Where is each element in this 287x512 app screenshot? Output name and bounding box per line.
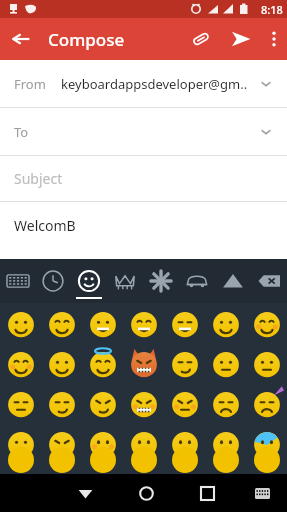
- button[interactable]: Delete: [251, 259, 287, 303]
- button[interactable]: Emoji: [164, 385, 205, 425]
- button[interactable]: From: [0, 60, 287, 107]
- button[interactable]: Send: [221, 19, 261, 59]
- button[interactable]: Back: [55, 474, 116, 512]
- button[interactable]: To: [0, 108, 287, 155]
- button[interactable]: Objects: [107, 259, 143, 303]
- button[interactable]: Emoji: [164, 305, 205, 345]
- button[interactable]: Keyboard: [0, 259, 35, 303]
- button[interactable]: Emoji: [205, 345, 246, 385]
- button[interactable]: Symbols: [143, 259, 179, 303]
- button[interactable]: Emoji: [205, 385, 246, 425]
- staticText: To: [14, 123, 259, 141]
- button[interactable]: Emoji: [205, 305, 246, 345]
- button[interactable]: Emoji: [205, 425, 246, 465]
- button[interactable]: Home: [116, 474, 177, 512]
- button[interactable]: Emoji: [0, 385, 41, 425]
- staticText: keyboardappsdeveloper@gm..: [61, 75, 259, 93]
- button[interactable]: Subject: [0, 156, 287, 201]
- button[interactable]: Nature: [215, 259, 251, 303]
- button[interactable]: Recent: [35, 259, 71, 303]
- button[interactable]: Emoji: [82, 425, 123, 465]
- button[interactable]: Emoji: [246, 425, 287, 465]
- button[interactable]: Emoji: [123, 345, 164, 385]
- button[interactable]: Emoji: [246, 385, 287, 425]
- staticText: 8:18: [261, 2, 283, 17]
- button[interactable]: Emoji: [41, 425, 82, 465]
- button[interactable]: Emoji: [82, 385, 123, 425]
- button[interactable]: Emoji: [41, 345, 82, 385]
- button[interactable]: Emoji: [164, 345, 205, 385]
- button[interactable]: Emoji: [41, 385, 82, 425]
- button[interactable]: Emoji: [0, 305, 41, 345]
- button[interactable]: Emoji: [246, 345, 287, 385]
- button[interactable]: Attach file: [181, 19, 221, 59]
- button[interactable]: Emoji: [0, 345, 41, 385]
- staticText: WelcomB: [14, 216, 76, 235]
- button[interactable]: More options: [261, 18, 287, 60]
- button[interactable]: Emoji: [82, 305, 123, 345]
- staticText: Subject: [14, 169, 63, 188]
- button[interactable]: Emoji: [164, 425, 205, 465]
- staticText: Compose: [48, 28, 125, 51]
- button[interactable]: Switch keyboard: [238, 474, 287, 512]
- button[interactable]: Emoji: [246, 305, 287, 345]
- button[interactable]: Emoji: [0, 425, 41, 465]
- button[interactable]: Emoji: [82, 345, 123, 385]
- button[interactable]: Recent apps: [177, 474, 238, 512]
- button[interactable]: Emoji: [123, 305, 164, 345]
- button[interactable]: WelcomB: [0, 202, 287, 248]
- button[interactable]: Emoji: [41, 305, 82, 345]
- staticText: From: [14, 75, 46, 93]
- button[interactable]: Travel: [179, 259, 215, 303]
- button[interactable]: Emoji: [123, 385, 164, 425]
- button[interactable]: Back: [0, 18, 42, 60]
- button[interactable]: Smileys: [71, 259, 107, 303]
- button[interactable]: Emoji: [123, 425, 164, 465]
